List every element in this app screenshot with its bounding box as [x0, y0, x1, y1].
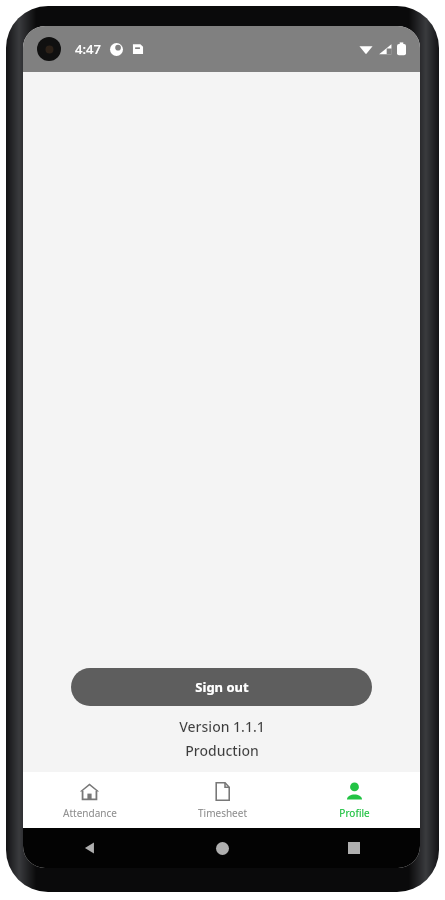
staticText: Profile — [339, 806, 370, 820]
button[interactable]: Recent apps — [288, 828, 420, 868]
staticText: Version 1.1.1 — [179, 717, 265, 736]
staticText: Attendance — [63, 806, 117, 820]
other: Timesheet — [212, 781, 233, 802]
button[interactable]: Back — [23, 828, 156, 868]
button[interactable]: Attendance — [23, 772, 156, 828]
staticText: Sign out — [195, 678, 249, 696]
other: Attendance — [79, 781, 100, 802]
other: Profile — [344, 781, 365, 802]
button[interactable]: Sign out — [71, 668, 372, 706]
staticText: Production — [185, 741, 259, 760]
button[interactable]: Timesheet — [156, 772, 288, 828]
button[interactable]: Home — [156, 828, 288, 868]
staticText: Timesheet — [198, 806, 247, 820]
button[interactable]: Profile — [288, 772, 420, 828]
staticText: 4:47 — [75, 40, 101, 58]
